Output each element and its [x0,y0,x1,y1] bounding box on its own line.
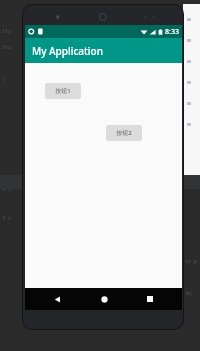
staticText: 按钮1 [55,87,71,95]
staticText: 4 s [2,186,12,193]
staticText: My Application [32,44,103,58]
button[interactable]: Home [90,288,118,310]
staticText: ms. [186,290,196,297]
button[interactable]: Recent apps [136,288,164,310]
button[interactable]: 按钮2 [106,125,142,141]
staticText: 按钮2 [116,129,132,137]
staticText: ) : [2,76,12,83]
staticText: Sta [2,44,12,51]
button[interactable]: Back [43,288,71,310]
button[interactable]: 按钮1 [45,83,81,99]
staticText: ] in p [179,258,198,265]
staticText: 3 s [2,215,12,222]
staticText: : [2,60,6,67]
staticText: 8:33 [165,27,179,37]
staticText: ity [2,28,12,35]
